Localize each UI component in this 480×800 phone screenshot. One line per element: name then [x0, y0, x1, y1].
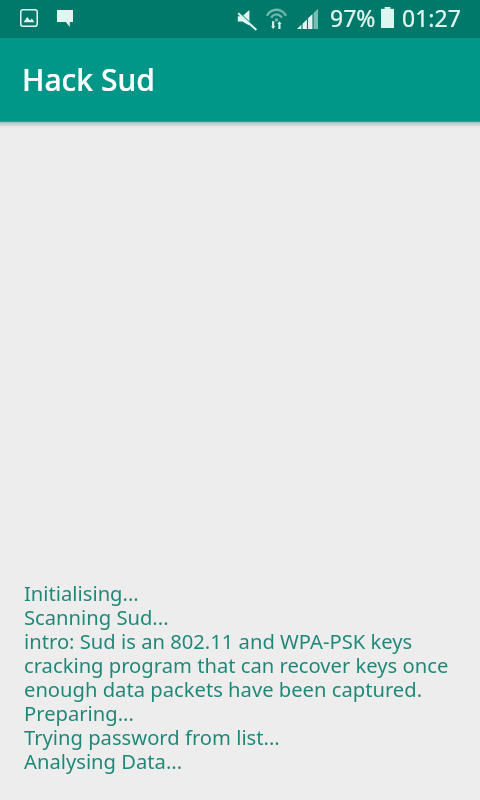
other: Battery 97 percent [381, 7, 394, 28]
other: Wi-Fi connected [266, 6, 287, 29]
staticText: Initialising... Scanning Sud... intro: S… [24, 579, 474, 775]
button[interactable]: Initialising... Scanning Sud... intro: S… [0, 128, 480, 800]
staticText: 97% [330, 2, 376, 33]
staticText: Hack Sud [22, 59, 155, 100]
other: Mobile signal [297, 8, 318, 29]
other: New message [57, 10, 73, 27]
staticText: 01:27 [402, 2, 461, 33]
other: Screenshot captured [20, 9, 38, 27]
other: Sound muted [237, 9, 257, 30]
button[interactable]: Hack Sud [0, 38, 480, 121]
